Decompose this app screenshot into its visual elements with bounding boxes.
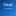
staticText: Sync now (4, 8, 11, 9)
staticText: Cloud (3, 3, 12, 7)
